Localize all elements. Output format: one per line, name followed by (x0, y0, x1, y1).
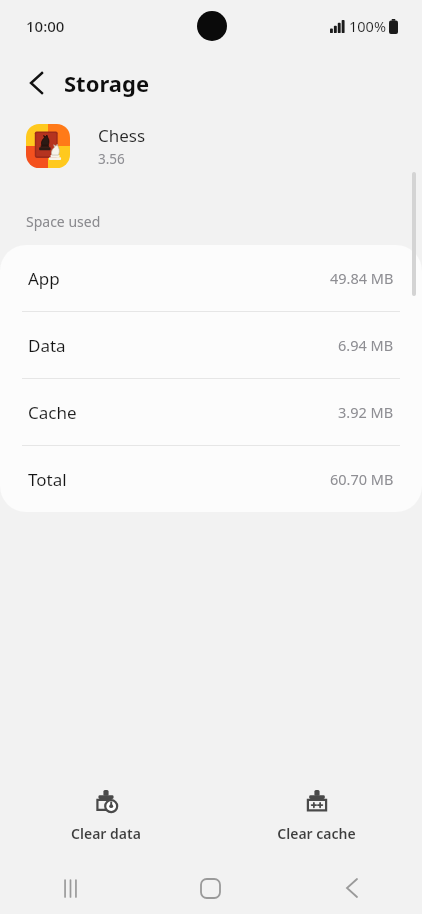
staticText: Storage (64, 68, 150, 98)
staticText: Cache (28, 401, 77, 424)
staticText: App (28, 267, 60, 290)
staticText: Data (28, 334, 66, 357)
staticText: Total (28, 468, 67, 491)
button[interactable]: Chess (0, 114, 422, 178)
button[interactable]: Back (14, 61, 58, 105)
button[interactable]: App (0, 245, 422, 311)
staticText: 3.56 (98, 150, 125, 168)
staticText: 100% (349, 16, 386, 36)
staticText: 10:00 (26, 16, 65, 36)
button[interactable]: Cache (0, 379, 422, 445)
button[interactable]: Home (140, 862, 281, 914)
button[interactable]: Recents (0, 862, 140, 914)
staticText: Clear cache (277, 824, 356, 843)
button[interactable]: Clear cache (211, 781, 422, 851)
button[interactable]: Back (281, 862, 422, 914)
staticText: 3.92 MB (338, 402, 394, 422)
button[interactable]: Total (0, 446, 422, 512)
staticText: 60.70 MB (330, 469, 394, 489)
button[interactable]: Data (0, 312, 422, 378)
staticText: Chess (98, 124, 146, 147)
button[interactable]: Clear data (0, 781, 211, 851)
staticText: Space used (26, 212, 101, 231)
staticText: Clear data (71, 824, 141, 843)
staticText: 6.94 MB (338, 335, 394, 355)
staticText: 49.84 MB (330, 268, 394, 288)
